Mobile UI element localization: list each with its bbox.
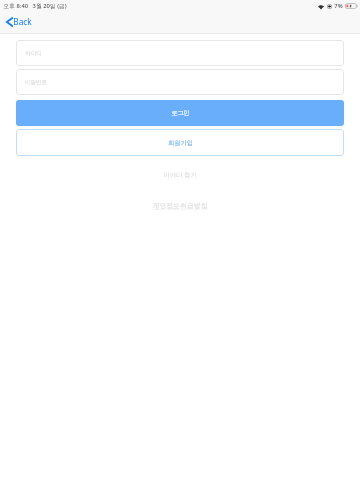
button[interactable]: Back bbox=[6, 16, 32, 27]
staticText: 개인정보취급방침 bbox=[152, 201, 208, 210]
staticText: 7% bbox=[334, 2, 343, 10]
other: Back bbox=[6, 17, 13, 27]
staticText: 아이디 bbox=[25, 50, 42, 57]
button[interactable]: 로그인 bbox=[16, 100, 344, 126]
staticText: 아이디 찾기 bbox=[163, 170, 197, 179]
staticText: 로그인 bbox=[171, 109, 190, 117]
button[interactable]: 아이디 bbox=[16, 40, 344, 66]
button[interactable]: 회원가입 bbox=[16, 129, 344, 156]
staticText: 비밀번호 bbox=[25, 79, 47, 86]
other: Do not disturb bbox=[327, 4, 332, 9]
button[interactable]: 개인정보취급방침 bbox=[16, 198, 344, 212]
staticText: 회원가입 bbox=[168, 139, 193, 147]
staticText: Back bbox=[13, 16, 32, 27]
staticText: 오후 8:40 3월 20일 (금) bbox=[3, 2, 67, 10]
other: Wi-Fi bbox=[318, 4, 324, 9]
other: Battery 7% bbox=[345, 3, 358, 9]
button[interactable]: 비밀번호 bbox=[16, 69, 344, 95]
